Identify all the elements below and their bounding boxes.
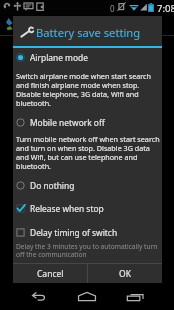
staticText: 7:08 [157, 2, 174, 15]
button[interactable]: Do nothing [13, 177, 162, 193]
staticText: Release when stop [30, 203, 104, 214]
staticText: Airplane mode [30, 52, 88, 63]
staticText: Do nothing [30, 180, 75, 191]
button[interactable]: Back [14, 292, 63, 301]
button[interactable]: Home [63, 292, 111, 301]
button[interactable]: OK [88, 264, 162, 283]
button[interactable]: Delay timing of switch [13, 224, 162, 240]
button[interactable]: Cancel [13, 264, 87, 283]
staticText: 0 [110, 3, 115, 14]
staticText: Delay timing of switch [30, 227, 118, 238]
button[interactable]: Airplane mode [13, 49, 162, 65]
staticText: Switch airplane mode when start search a… [16, 71, 160, 108]
staticText: Turn mobile network off when start searc… [16, 134, 160, 171]
button[interactable]: Release when stop [13, 200, 162, 216]
staticText: Cancel [37, 268, 64, 280]
staticText: Mobile network off [30, 117, 105, 128]
staticText: Delay the 3 minutes you to automatically… [16, 242, 162, 259]
staticText: OK [119, 268, 131, 280]
button[interactable]: Recent apps [111, 292, 159, 301]
button[interactable]: Mobile network off [13, 114, 162, 130]
staticText: Battery save setting [36, 25, 141, 40]
